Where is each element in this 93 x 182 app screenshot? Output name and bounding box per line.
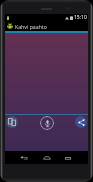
button[interactable]: Share (75, 116, 87, 128)
staticText: Kahvi paahto (15, 23, 47, 30)
button[interactable]: Voice input (40, 116, 54, 130)
button[interactable]: Kahvi paahto (5, 21, 88, 31)
staticText: 15:10 (74, 14, 87, 21)
button[interactable]: Recents (64, 155, 72, 161)
button[interactable]: Home (43, 155, 51, 161)
button[interactable]: Copy (6, 116, 18, 128)
button[interactable]: Back (20, 155, 28, 161)
